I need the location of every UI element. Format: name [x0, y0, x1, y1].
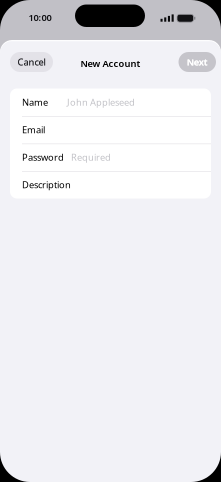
button[interactable]: Name	[10, 88, 211, 116]
staticText: New Account	[80, 57, 140, 70]
staticText: Description	[22, 179, 71, 191]
staticText: Next	[187, 56, 208, 68]
staticText: 10:00	[28, 11, 51, 24]
staticText: Name	[22, 96, 48, 108]
staticText: Cancel	[17, 56, 45, 68]
button[interactable]: Next	[178, 52, 216, 72]
button[interactable]: Cancel	[10, 52, 53, 72]
staticText: Cancel	[17, 56, 45, 68]
staticText: Required	[71, 151, 111, 163]
button[interactable]: Description	[10, 171, 211, 198]
staticText: Email	[22, 124, 45, 136]
button[interactable]: Email	[10, 116, 211, 143]
staticText: John Appleseed	[67, 96, 135, 108]
staticText: Password	[22, 151, 64, 163]
staticText: Next	[187, 56, 208, 68]
button[interactable]: Password	[10, 143, 211, 171]
